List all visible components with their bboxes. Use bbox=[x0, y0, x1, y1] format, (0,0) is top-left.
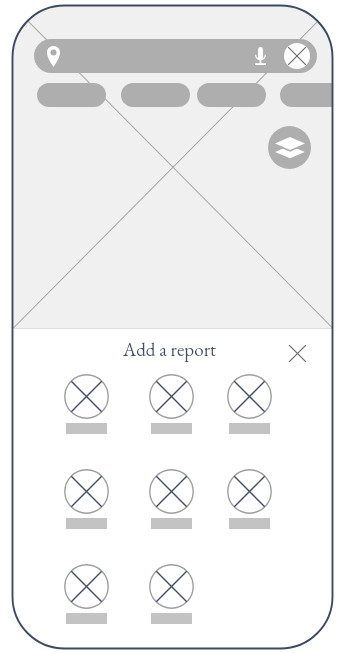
button[interactable]: Report option 7 bbox=[58, 564, 114, 624]
button[interactable]: Search here bbox=[34, 39, 317, 73]
button[interactable]: Report option 6 bbox=[221, 469, 277, 529]
button[interactable]: Close bbox=[286, 342, 309, 365]
button[interactable]: Report option 1 bbox=[58, 374, 114, 434]
button[interactable]: Filter 3 bbox=[197, 83, 266, 107]
button[interactable]: Filter 4 bbox=[280, 83, 333, 107]
button[interactable]: Voice search bbox=[249, 42, 271, 70]
button[interactable]: Account bbox=[284, 43, 310, 69]
staticText: Add a report bbox=[123, 337, 216, 362]
button[interactable]: Report option 2 bbox=[143, 374, 199, 434]
button[interactable]: Filter 1 bbox=[37, 83, 106, 107]
button[interactable]: Report option 3 bbox=[221, 374, 277, 434]
button[interactable]: Map layers bbox=[268, 126, 311, 169]
button[interactable]: Filter 2 bbox=[121, 83, 190, 107]
button[interactable]: Report option 4 bbox=[58, 469, 114, 529]
button[interactable]: Report option 8 bbox=[143, 564, 199, 624]
button[interactable]: Report option 5 bbox=[143, 469, 199, 529]
